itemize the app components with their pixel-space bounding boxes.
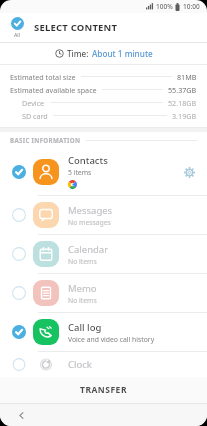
- button[interactable]: Clock checkbox: [10, 358, 28, 371]
- staticText: No items: [68, 296, 97, 305]
- button[interactable]: Calendar checkbox: [10, 245, 28, 263]
- staticText: BASIC INFORMATION: [10, 136, 81, 144]
- staticText: Contacts: [68, 154, 108, 167]
- staticText: 3.19GB: [172, 111, 197, 121]
- staticText: Clock: [68, 358, 92, 371]
- button[interactable]: Back: [12, 406, 30, 424]
- button[interactable]: Contacts checkbox: [0, 148, 207, 195]
- staticText: Call log: [68, 321, 102, 334]
- staticText: Calendar: [68, 243, 109, 256]
- staticText: 5 items: [68, 168, 92, 177]
- staticText: Estimated available space: [10, 85, 97, 95]
- staticText: No messages: [68, 218, 111, 227]
- staticText: Voice and video call history: [68, 335, 155, 344]
- button[interactable]: Memo checkbox: [10, 284, 28, 302]
- staticText: SD card: [22, 111, 48, 121]
- staticText: Time:: [67, 48, 89, 59]
- button[interactable]: Contacts checkbox: [10, 163, 28, 181]
- button[interactable]: Call log checkbox: [0, 313, 207, 351]
- staticText: About 1 minute: [92, 48, 153, 59]
- staticText: All: [14, 31, 20, 38]
- button[interactable]: Messages checkbox: [10, 206, 28, 224]
- staticText: 81MB: [177, 72, 197, 82]
- staticText: 52.18GB: [168, 98, 197, 108]
- staticText: Messages: [68, 204, 113, 217]
- button[interactable]: Calendar checkbox: [0, 235, 207, 273]
- button[interactable]: Call log checkbox: [10, 323, 28, 341]
- staticText: TRANSFER: [80, 384, 127, 396]
- staticText: 10:00: [183, 2, 200, 11]
- button[interactable]: Messages checkbox: [0, 196, 207, 234]
- button[interactable]: Select all: [0, 13, 34, 42]
- staticText: 55.37GB: [168, 85, 197, 95]
- staticText: Device: [22, 98, 45, 108]
- staticText: Estimated total size: [10, 72, 76, 82]
- button[interactable]: Clock checkbox: [0, 352, 207, 377]
- staticText: SELECT CONTENT: [34, 21, 118, 34]
- staticText: 100%: [156, 2, 173, 11]
- button[interactable]: TRANSFER: [0, 377, 207, 403]
- button[interactable]: Settings: [179, 162, 199, 182]
- staticText: No items: [68, 257, 97, 266]
- staticText: Memo: [68, 282, 97, 295]
- button[interactable]: Memo checkbox: [0, 274, 207, 312]
